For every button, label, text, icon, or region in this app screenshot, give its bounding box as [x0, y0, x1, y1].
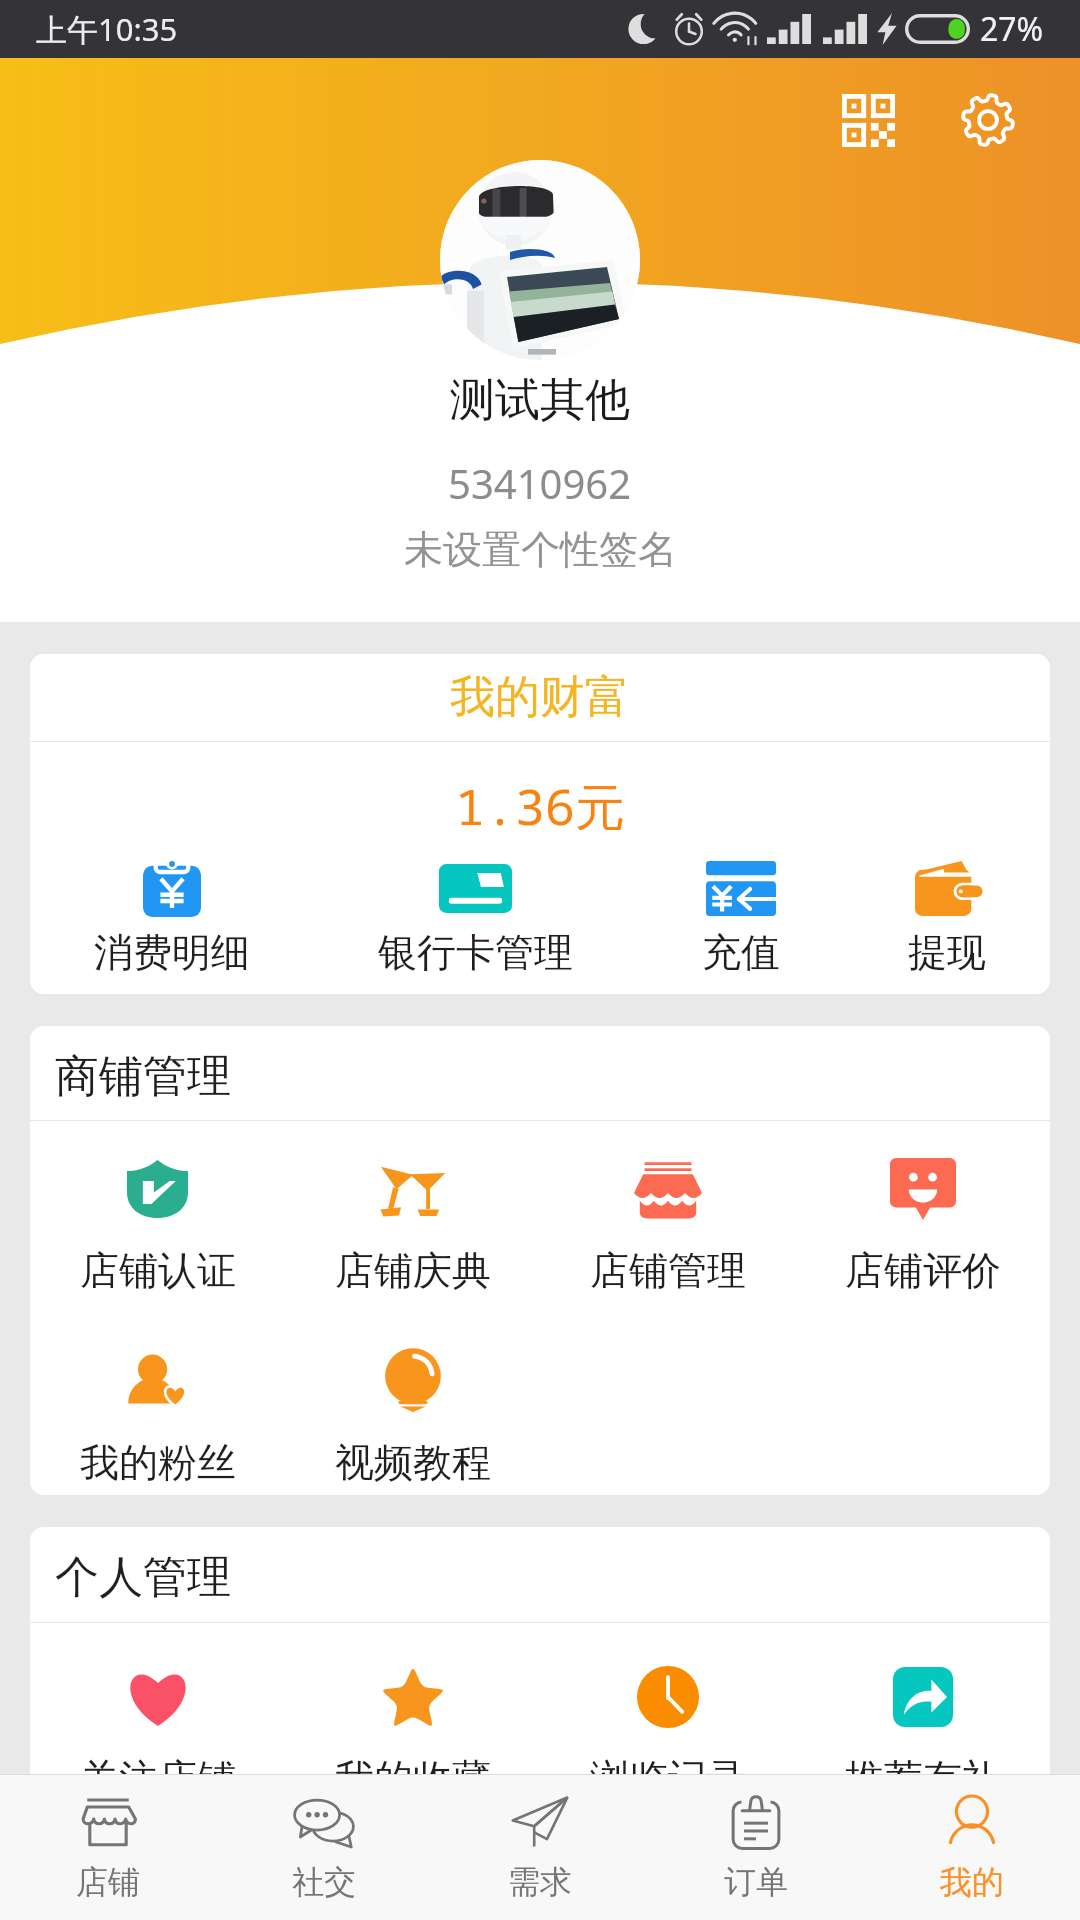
staticText: 店铺	[76, 1862, 140, 1902]
button[interactable]: 提现	[908, 857, 986, 977]
staticText: 银行卡管理	[378, 928, 573, 977]
staticText: 我的	[940, 1862, 1004, 1902]
button[interactable]: 订单	[648, 1775, 864, 1920]
button[interactable]: 设置	[944, 76, 1032, 164]
staticText: 店铺庆典	[335, 1246, 491, 1295]
staticText: 消费明细	[94, 928, 250, 977]
staticText: 我的收藏	[335, 1754, 491, 1803]
staticText: 53410962	[448, 456, 632, 510]
button[interactable]: 店铺评价	[795, 1158, 1050, 1295]
button[interactable]: 店铺管理	[540, 1158, 795, 1295]
staticText: 我的财富	[450, 669, 630, 726]
button[interactable]: 视频教程	[285, 1350, 540, 1487]
staticText: 推荐有礼	[845, 1754, 1001, 1803]
staticText: 店铺认证	[80, 1246, 236, 1295]
staticText: 订单	[724, 1862, 788, 1902]
button[interactable]: 店铺认证	[30, 1158, 285, 1295]
staticText: 视频教程	[335, 1438, 491, 1487]
button[interactable]: 我的收藏	[285, 1666, 540, 1803]
button[interactable]: 我的粉丝	[30, 1350, 285, 1487]
button[interactable]: 充值	[702, 857, 780, 977]
staticText: 商铺管理	[55, 1049, 231, 1104]
staticText: 1.36元	[455, 772, 625, 830]
staticText: 27%	[980, 7, 1044, 51]
button[interactable]: 社交	[216, 1775, 432, 1920]
button[interactable]: 头像	[440, 160, 640, 360]
staticText: 店铺评价	[845, 1246, 1001, 1295]
button[interactable]: 银行卡管理	[378, 857, 573, 977]
button[interactable]: 我的	[864, 1775, 1080, 1920]
staticText: 需求	[508, 1862, 572, 1902]
button[interactable]: 扫一扫	[824, 76, 912, 164]
button[interactable]: 店铺庆典	[285, 1158, 540, 1295]
staticText: 提现	[908, 928, 986, 977]
staticText: 测试其他	[450, 372, 630, 429]
button[interactable]: 店铺	[0, 1775, 216, 1920]
staticText: 浏览记录	[590, 1754, 746, 1803]
button[interactable]: 消费明细	[94, 857, 250, 977]
button[interactable]: 关注店铺	[30, 1666, 285, 1803]
button[interactable]: 浏览记录	[540, 1666, 795, 1803]
button[interactable]: 推荐有礼	[795, 1666, 1050, 1803]
staticText: 上午10:35	[36, 8, 178, 50]
button[interactable]: 需求	[432, 1775, 648, 1920]
staticText: 充值	[702, 928, 780, 977]
staticText: 社交	[292, 1862, 356, 1902]
staticText: 个人管理	[55, 1550, 231, 1605]
staticText: 我的粉丝	[80, 1438, 236, 1487]
staticText: 店铺管理	[590, 1246, 746, 1295]
staticText: 关注店铺	[80, 1754, 236, 1803]
staticText: 未设置个性签名	[404, 525, 677, 574]
